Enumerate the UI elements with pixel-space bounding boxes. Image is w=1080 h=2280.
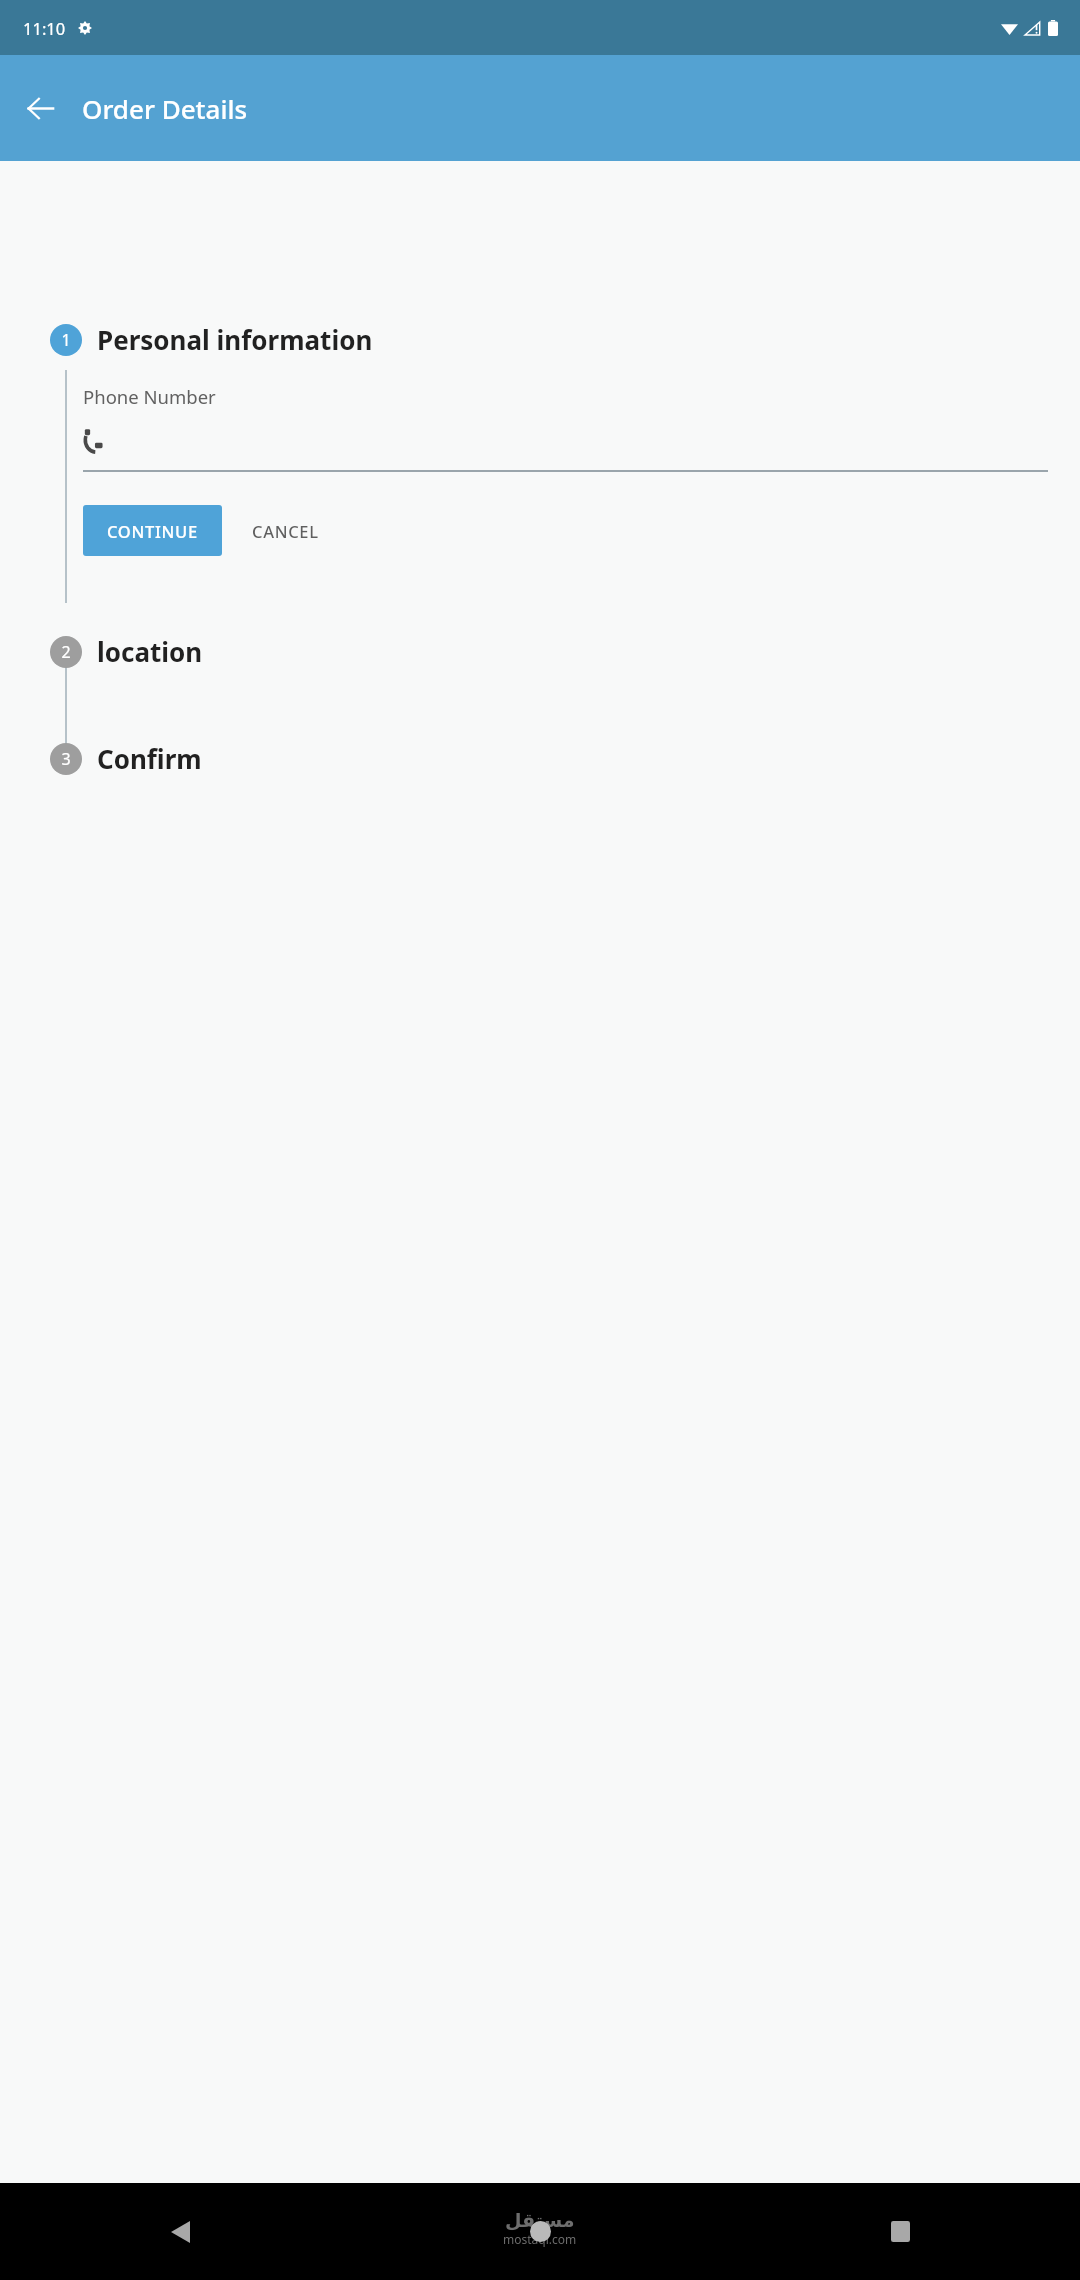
- staticText: 1: [61, 329, 71, 351]
- button[interactable]: CANCEL: [236, 505, 335, 556]
- button[interactable]: 1: [0, 322, 1080, 357]
- staticText: Phone Number: [83, 384, 216, 409]
- staticText: CONTINUE: [107, 520, 198, 542]
- button[interactable]: Back: [0, 2183, 360, 2280]
- button[interactable]: Recent apps: [720, 2183, 1080, 2280]
- staticText: location: [97, 634, 203, 669]
- button[interactable]: Back: [14, 82, 66, 134]
- staticText: Confirm: [97, 741, 202, 776]
- staticText: mostaql.com: [503, 2231, 577, 2247]
- button[interactable]: Home: [360, 2183, 720, 2280]
- button[interactable]: 2: [0, 634, 1080, 669]
- staticText: 2: [61, 641, 71, 663]
- staticText: Personal information: [97, 322, 373, 357]
- staticText: Order Details: [82, 91, 248, 126]
- staticText: CANCEL: [252, 520, 319, 542]
- staticText: 11:10: [23, 17, 66, 39]
- button[interactable]: CONTINUE: [83, 505, 222, 556]
- button[interactable]: [83, 428, 1048, 451]
- staticText: مستقل: [505, 2209, 575, 2231]
- button[interactable]: 3: [0, 741, 1080, 776]
- staticText: 3: [61, 748, 71, 770]
